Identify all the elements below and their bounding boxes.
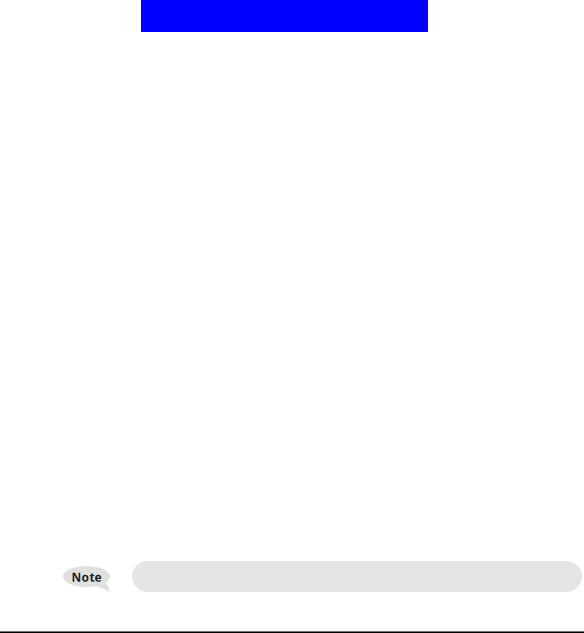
button[interactable]: Note field (132, 561, 582, 592)
button[interactable]: Note (63, 566, 110, 593)
staticText: Note (71, 569, 101, 585)
